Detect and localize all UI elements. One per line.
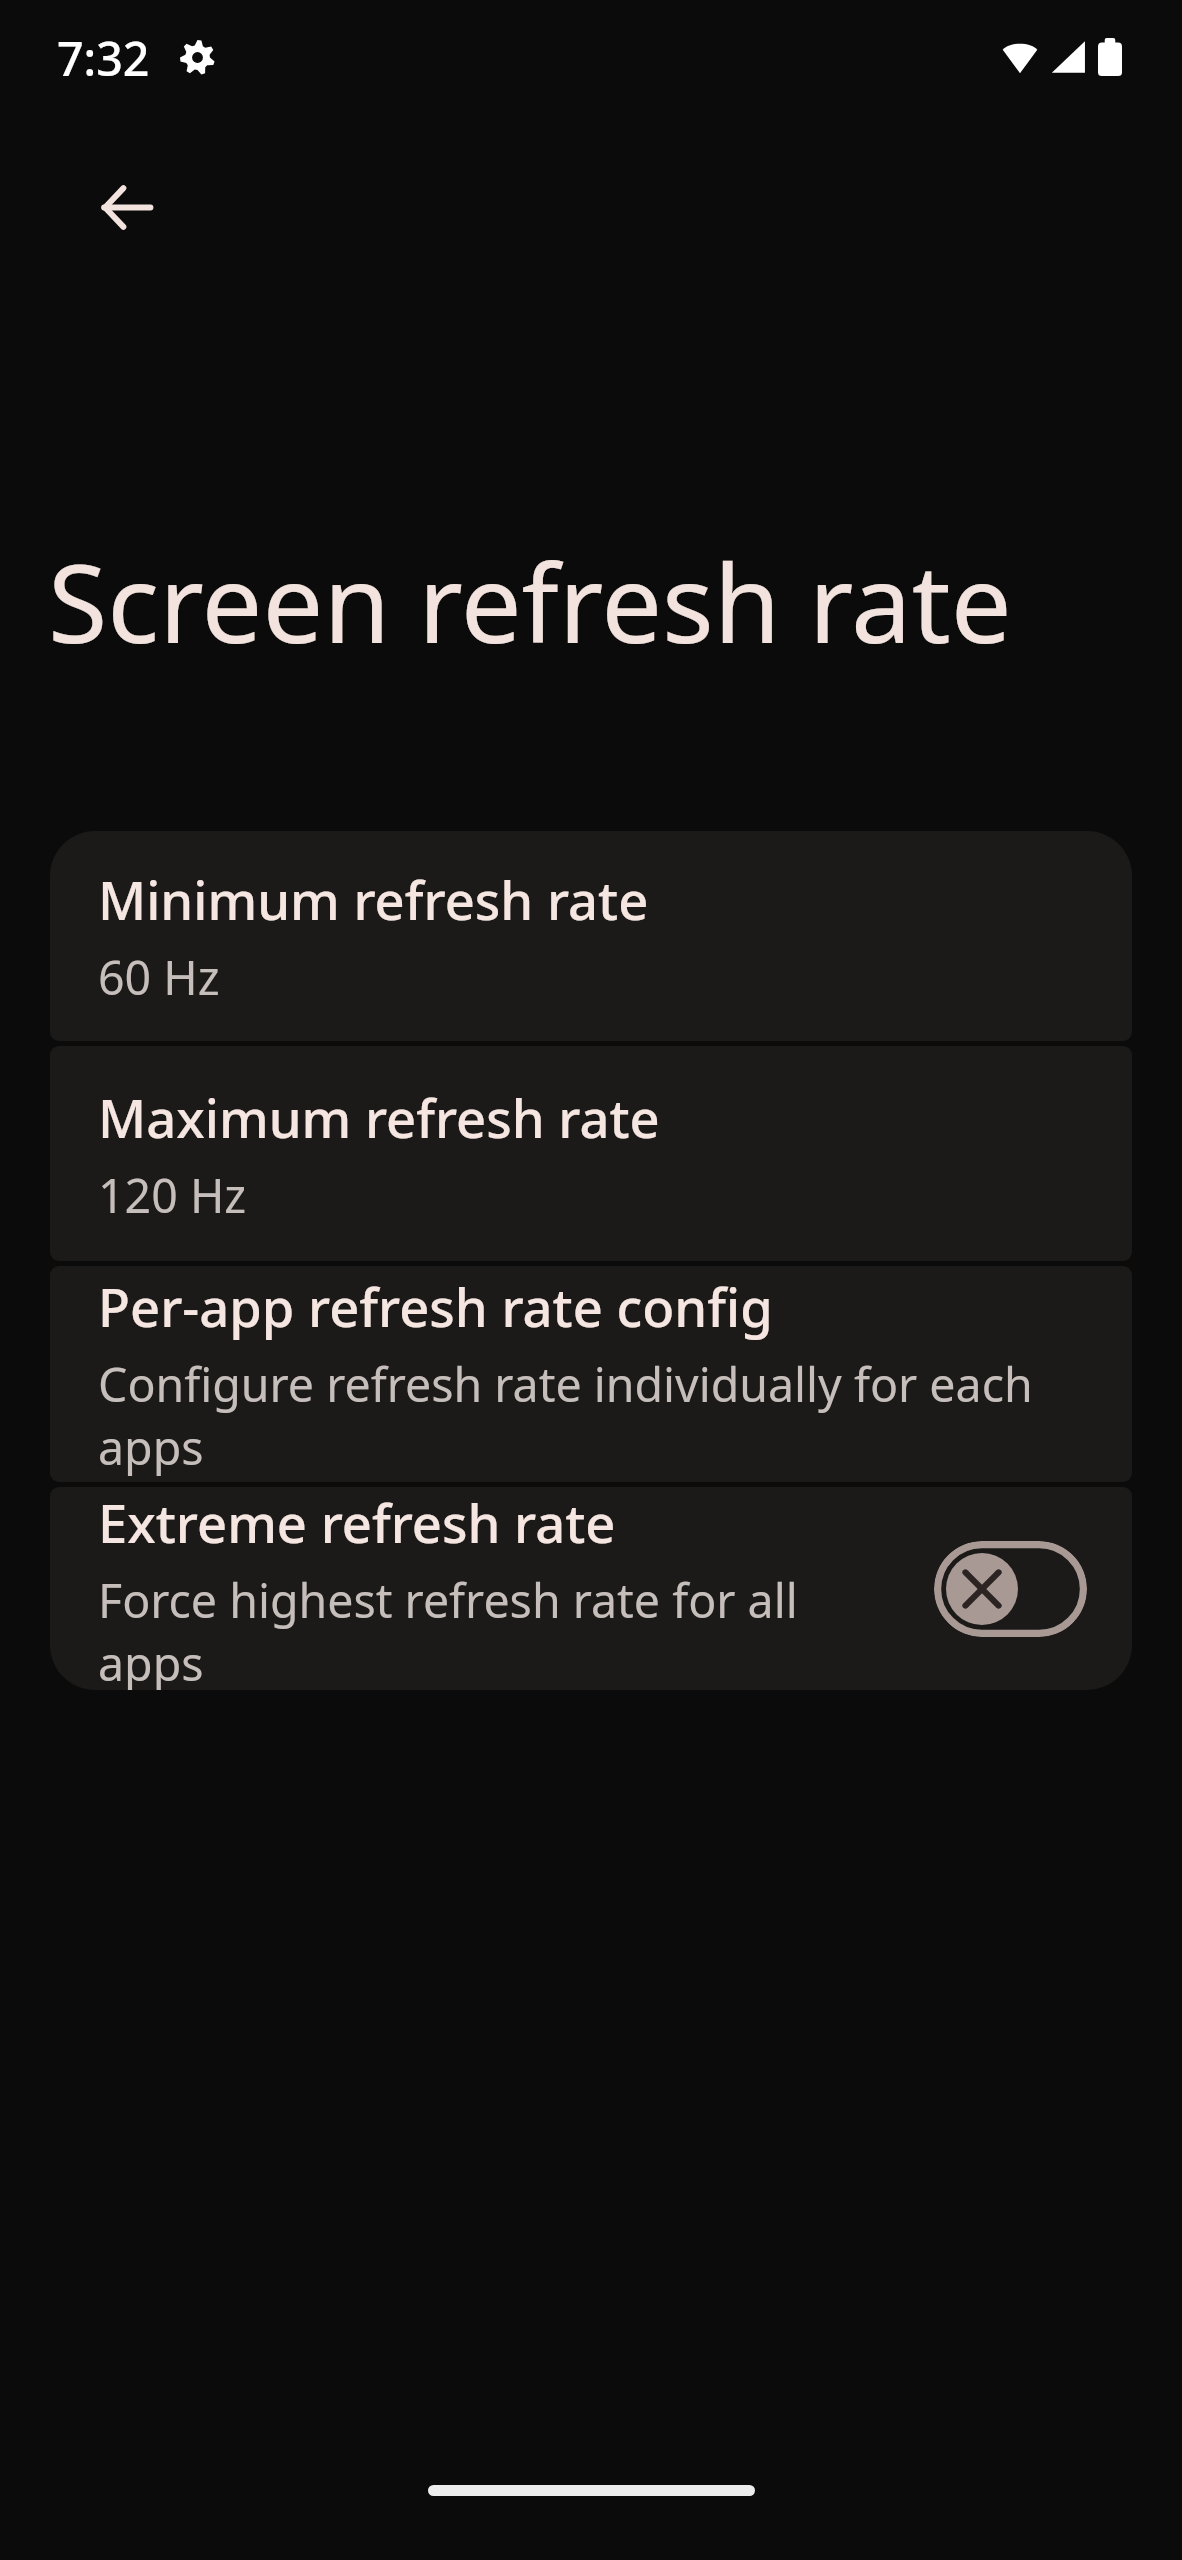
staticText: Configure refresh rate individually for … — [98, 1352, 1087, 1478]
staticText: Minimum refresh rate — [98, 864, 649, 936]
button[interactable]: Per-app refresh rate config — [50, 1266, 1132, 1482]
staticText: 60 Hz — [98, 945, 220, 1008]
button[interactable]: Extreme refresh rate toggle, off — [934, 1541, 1087, 1637]
staticText: 120 Hz — [98, 1163, 247, 1226]
staticText: Per-app refresh rate config — [98, 1271, 773, 1343]
button[interactable]: Back — [60, 141, 192, 273]
staticText: Screen refresh rate — [48, 528, 1012, 675]
button[interactable]: Maximum refresh rate — [50, 1046, 1132, 1261]
staticText: 7:32 — [57, 26, 150, 89]
button[interactable]: Minimum refresh rate — [50, 831, 1132, 1041]
button[interactable]: Extreme refresh rate — [50, 1487, 1132, 1690]
staticText: Force highest refresh rate for all apps — [98, 1568, 910, 1690]
staticText: Maximum refresh rate — [98, 1082, 660, 1154]
staticText: Extreme refresh rate — [98, 1487, 616, 1559]
